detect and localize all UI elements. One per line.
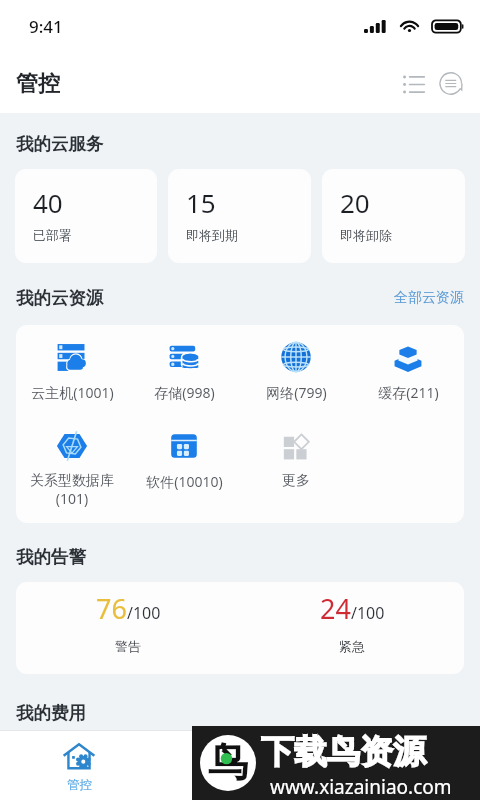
- staticText: 网络(799): [266, 383, 327, 402]
- staticText: 下载鸟资源: [261, 731, 426, 773]
- staticText: 云主机(1001): [31, 383, 114, 402]
- staticText: 我的费用: [16, 702, 86, 724]
- staticText: 鸟: [208, 737, 248, 787]
- button[interactable]: 存储(998): [128, 341, 240, 402]
- staticText: /100: [351, 602, 385, 624]
- staticText: 缓存(211): [378, 383, 439, 402]
- button[interactable]: 管控: [51, 741, 107, 793]
- staticText: 更多: [282, 472, 310, 490]
- staticText: 即将到期: [186, 227, 238, 243]
- staticText: /100: [127, 602, 161, 624]
- button[interactable]: 40: [15, 169, 157, 263]
- button[interactable]: Messages: [434, 67, 468, 101]
- staticText: 我的云服务: [16, 133, 104, 155]
- button[interactable]: 76: [16, 590, 240, 654]
- staticText: 20: [340, 185, 370, 220]
- staticText: www.xiazainiao.com: [270, 774, 452, 800]
- staticText: 全部云资源: [394, 289, 464, 307]
- staticText: 76: [96, 590, 127, 627]
- button[interactable]: 软件(10010): [128, 430, 240, 491]
- staticText: 管控: [16, 70, 60, 98]
- staticText: 已部署: [33, 227, 72, 243]
- staticText: 我的云资源: [16, 287, 104, 309]
- staticText: 管控: [67, 777, 92, 793]
- button[interactable]: 20: [322, 169, 465, 263]
- staticText: 9:41: [29, 15, 63, 38]
- button[interactable]: 云主机(1001): [16, 341, 128, 402]
- button[interactable]: 15: [168, 169, 311, 263]
- staticText: 紧急: [339, 638, 365, 654]
- button[interactable]: Task list: [397, 67, 431, 101]
- staticText: 警告: [115, 638, 141, 654]
- staticText: 40: [33, 185, 63, 220]
- button[interactable]: 全部云资源: [394, 289, 464, 307]
- staticText: 关系型数据库 (101): [30, 472, 114, 508]
- staticText: 15: [186, 185, 216, 220]
- button[interactable]: 更多: [240, 430, 352, 490]
- button[interactable]: 24: [240, 590, 464, 654]
- staticText: 24: [320, 590, 351, 627]
- staticText: 我的告警: [16, 546, 86, 568]
- staticText: 存储(998): [154, 383, 215, 402]
- button[interactable]: 关系型数据库 (101): [16, 430, 128, 508]
- staticText: 即将卸除: [340, 227, 392, 243]
- button[interactable]: 缓存(211): [352, 341, 464, 402]
- staticText: 软件(10010): [146, 472, 223, 491]
- button[interactable]: 网络(799): [240, 341, 352, 402]
